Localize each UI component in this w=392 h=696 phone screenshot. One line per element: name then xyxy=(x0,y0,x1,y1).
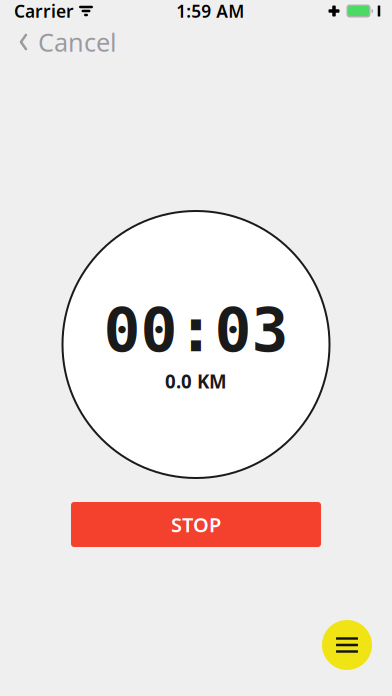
staticText: Carrier xyxy=(14,0,74,22)
button[interactable]: Menu xyxy=(322,620,372,670)
staticText: Cancel xyxy=(38,25,117,59)
button[interactable]: STOP xyxy=(71,502,321,547)
staticText: STOP xyxy=(171,511,221,538)
staticText: 00:03 xyxy=(103,295,288,365)
button[interactable]: Cancel xyxy=(0,19,117,65)
staticText: 0.0 KM xyxy=(165,369,227,394)
staticText: 1:59 AM xyxy=(176,0,244,22)
